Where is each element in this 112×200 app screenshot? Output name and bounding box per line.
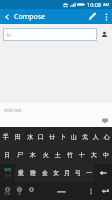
button[interactable]: 田	[12, 127, 24, 146]
staticText: 一	[86, 169, 92, 177]
staticText: 女	[53, 169, 59, 177]
staticText: AM	[102, 2, 110, 7]
staticText: 金	[42, 169, 48, 177]
staticText: 月	[64, 169, 70, 177]
button[interactable]: Cursor	[84, 182, 98, 200]
staticText: Add text	[4, 107, 22, 113]
button[interactable]: 手	[0, 127, 12, 146]
staticText: 戈	[82, 133, 88, 141]
staticText: 心	[104, 133, 110, 141]
button[interactable]: 弓	[72, 164, 83, 182]
staticText: 简体	[5, 174, 12, 178]
staticText: 田	[15, 133, 21, 141]
button[interactable]: 十	[76, 146, 88, 164]
button[interactable]: 竹	[64, 146, 76, 164]
button[interactable]: Choose contact	[98, 28, 110, 40]
button[interactable]: 金	[39, 164, 50, 182]
staticText: 難	[30, 169, 36, 177]
button[interactable]: To	[3, 28, 97, 41]
staticText: 廿	[49, 133, 55, 141]
staticText: 10:08	[87, 1, 102, 8]
staticText: Compose	[14, 12, 46, 22]
staticText: 人	[93, 133, 99, 141]
staticText: 土	[55, 151, 61, 159]
button[interactable]: 女	[50, 164, 61, 182]
button[interactable]: More options	[100, 9, 112, 24]
button[interactable]: Hide keyboard	[100, 116, 110, 126]
staticText: ,	[31, 192, 32, 196]
staticText: 山	[71, 133, 77, 141]
button[interactable]: Change language	[14, 182, 25, 200]
button[interactable]: 重	[15, 164, 27, 182]
staticText: 繁體	[4, 168, 12, 173]
staticText: 竹	[67, 151, 73, 159]
button[interactable]: 山	[68, 127, 79, 146]
button[interactable]: 水	[24, 127, 35, 146]
button[interactable]: 中	[100, 146, 112, 164]
button[interactable]: 12#	[0, 182, 14, 200]
button[interactable]: 心	[101, 127, 112, 146]
staticText: 木	[30, 151, 36, 159]
button[interactable]: 難	[27, 164, 39, 182]
button[interactable]: 廿	[46, 127, 57, 146]
staticText: 大	[91, 151, 97, 159]
staticText: 尸	[17, 151, 23, 159]
staticText: 手	[3, 133, 9, 141]
button[interactable]: Enter	[98, 182, 112, 200]
staticText: 英	[18, 192, 22, 196]
staticText: 口	[38, 133, 44, 141]
staticText: 中	[103, 151, 109, 159]
staticText: 12#	[4, 192, 10, 196]
button[interactable]: 日	[0, 146, 13, 164]
button[interactable]: 人	[90, 127, 101, 146]
button[interactable]: 木	[26, 146, 39, 164]
staticText: 卜	[60, 133, 66, 141]
button[interactable]: 尸	[13, 146, 26, 164]
button[interactable]: 戈	[79, 127, 90, 146]
button[interactable]: 火	[39, 146, 52, 164]
button[interactable]: 月	[61, 164, 72, 182]
button[interactable]: Attach file	[84, 9, 100, 24]
button[interactable]: 一	[83, 164, 94, 182]
button[interactable]: Space	[38, 182, 84, 200]
button[interactable]: Back	[0, 9, 14, 24]
button[interactable]: 繁體	[0, 164, 15, 182]
button[interactable]: 大	[88, 146, 100, 164]
staticText: 十	[79, 151, 85, 159]
button[interactable]: 卜	[57, 127, 68, 146]
staticText: To	[6, 32, 11, 38]
staticText: 弓	[75, 169, 81, 177]
staticText: 火	[43, 151, 49, 159]
button[interactable]: Backspace	[94, 164, 112, 182]
button[interactable]: 土	[52, 146, 64, 164]
button[interactable]: Settings	[25, 182, 38, 200]
button[interactable]: 口	[35, 127, 46, 146]
staticText: 日	[4, 151, 10, 159]
staticText: 水	[27, 133, 33, 141]
staticText: 重	[18, 169, 24, 177]
